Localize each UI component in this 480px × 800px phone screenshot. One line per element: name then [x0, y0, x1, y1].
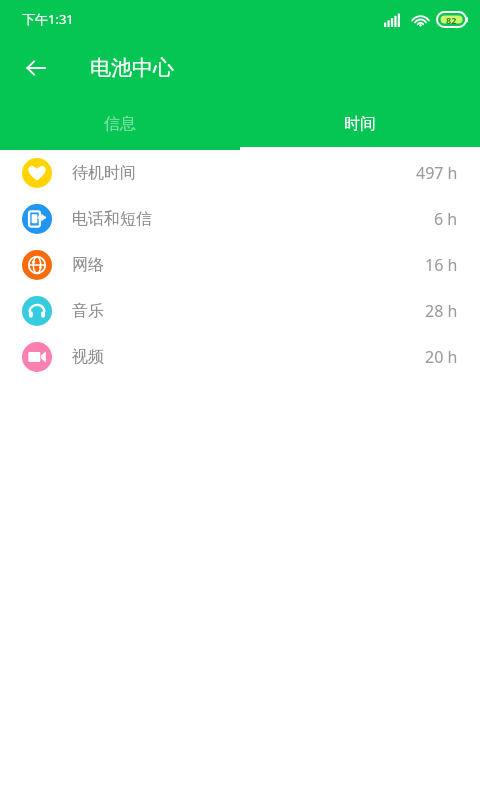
- staticText: 信息: [104, 114, 136, 134]
- staticText: 音乐: [72, 301, 425, 321]
- button[interactable]: Back: [12, 44, 60, 92]
- staticText: 视频: [72, 347, 425, 367]
- staticText: 82: [446, 14, 457, 26]
- staticText: 电话和短信: [72, 209, 434, 229]
- button[interactable]: 时间: [240, 98, 480, 150]
- button[interactable]: 待机时间: [0, 150, 480, 196]
- staticText: 28 h: [425, 300, 458, 322]
- staticText: 6 h: [434, 208, 458, 230]
- staticText: 电池中心: [90, 55, 174, 81]
- staticText: 时间: [344, 114, 376, 134]
- button[interactable]: 电话和短信: [0, 196, 480, 242]
- staticText: 待机时间: [72, 163, 416, 183]
- button[interactable]: 音乐: [0, 288, 480, 334]
- staticText: 20 h: [425, 346, 458, 368]
- button[interactable]: 视频: [0, 334, 480, 380]
- staticText: 497 h: [416, 162, 458, 184]
- staticText: 下午1:31: [22, 10, 74, 28]
- staticText: 网络: [72, 255, 425, 275]
- button[interactable]: 网络: [0, 242, 480, 288]
- staticText: 16 h: [425, 254, 458, 276]
- button[interactable]: 信息: [0, 98, 240, 150]
